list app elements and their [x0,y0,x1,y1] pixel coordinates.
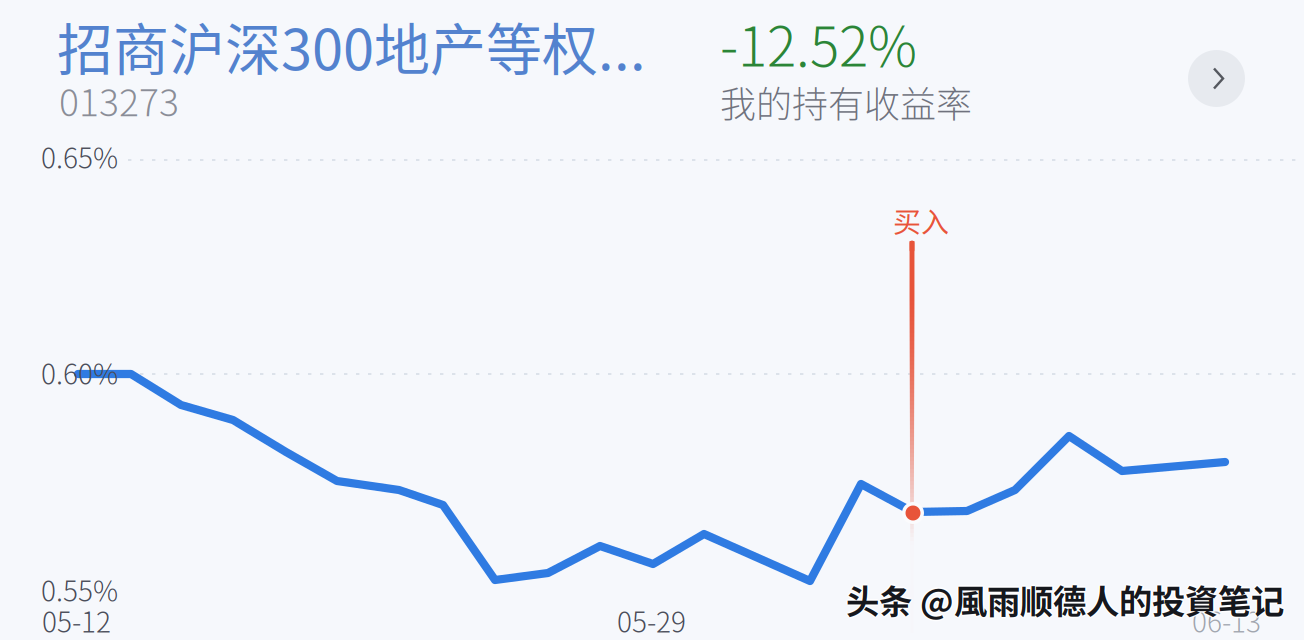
staticText: 06-13 [1192,600,1261,640]
staticText: 头条 @風雨顺德人的投資笔记 [846,575,1284,623]
staticText: 头条 @風雨顺德人的投資笔记 [848,575,1286,623]
staticText: -12.52% [720,3,917,82]
staticText: 头条 @風雨顺德人的投資笔记 [846,573,1284,622]
button[interactable]: -12.52% [720,3,980,123]
staticText: 013273 [59,73,179,127]
button[interactable]: Holdings detail [1188,50,1245,107]
staticText: 头条 @風雨顺德人的投資笔记 [846,577,1284,625]
staticText: 05-29 [617,600,686,640]
staticText: 0.55% [41,569,118,609]
button[interactable]: 招商沪深300地产等权... [57,5,657,123]
staticText: 0.65% [41,136,118,176]
staticText: 0.60% [41,352,118,392]
staticText: 我的持有收益率 [720,76,972,128]
staticText: 买入 [893,200,949,240]
staticText: 头条 @風雨顺德人的投資笔记 [844,575,1282,623]
staticText: 招商沪深300地产等权... [57,5,646,86]
staticText: 05-12 [42,600,111,640]
